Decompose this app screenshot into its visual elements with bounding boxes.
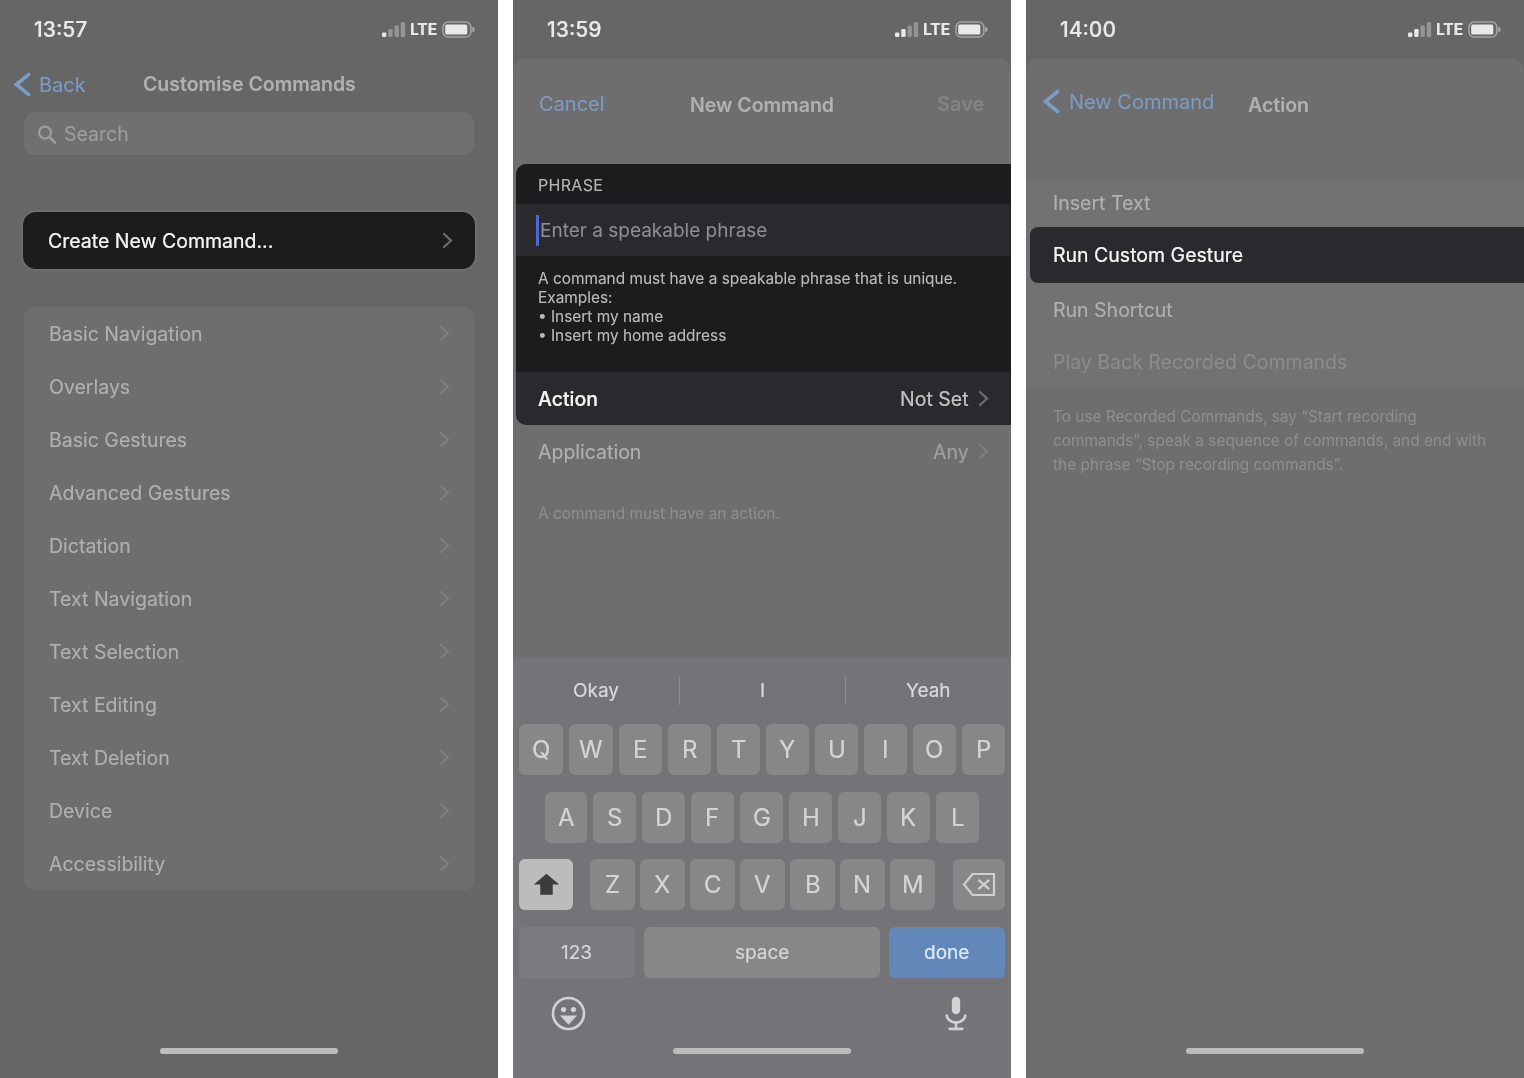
button[interactable]: O [913, 724, 956, 775]
staticText: space [735, 941, 790, 964]
staticText: Run Shortcut [1053, 298, 1173, 322]
button[interactable]: New Command [1043, 89, 1221, 114]
staticText: LTE [410, 20, 438, 39]
button[interactable]: H [789, 792, 832, 843]
button[interactable]: Yeah [846, 657, 1011, 724]
button[interactable]: Overlays [24, 360, 474, 413]
button[interactable]: D [642, 792, 685, 843]
staticText: Not Set [900, 387, 969, 411]
staticText: Run Custom Gesture [1053, 243, 1244, 267]
staticText: S [607, 803, 623, 832]
button[interactable]: J [838, 792, 881, 843]
button[interactable]: L [936, 792, 979, 843]
button[interactable]: Cancel [539, 92, 605, 116]
button[interactable]: Text Editing [24, 678, 474, 731]
button[interactable]: Text Navigation [24, 572, 474, 625]
staticText: A [558, 803, 575, 832]
staticText: H [802, 803, 820, 832]
button[interactable]: done [889, 927, 1005, 978]
button[interactable]: R [668, 724, 711, 775]
button[interactable]: W [569, 724, 613, 775]
staticText: 123 [561, 941, 593, 964]
staticText: A command must have a speakable phrase t… [538, 269, 958, 288]
button[interactable]: Text Deletion [24, 731, 474, 784]
staticText: N [853, 870, 872, 899]
staticText: To use Recorded Commands, say “Start rec… [1053, 407, 1502, 474]
button[interactable]: F [691, 792, 734, 843]
button[interactable]: M [890, 859, 935, 910]
button[interactable]: space [644, 927, 880, 978]
button[interactable]: I [864, 724, 907, 775]
button[interactable]: Okay [513, 657, 679, 724]
button[interactable]: Text Selection [24, 625, 474, 678]
button[interactable]: A [545, 792, 587, 843]
button[interactable]: Advanced Gestures [24, 466, 474, 519]
button[interactable]: N [840, 859, 885, 910]
button[interactable]: Run Shortcut [1026, 283, 1524, 336]
staticText: Text Selection [49, 640, 180, 664]
staticText: W [579, 735, 603, 764]
staticText: T [731, 735, 747, 764]
staticText: Enter a speakable phrase [540, 219, 768, 242]
staticText: A command must have an action. [538, 504, 780, 523]
button[interactable]: Application [513, 425, 1011, 478]
button[interactable]: Search [24, 112, 474, 155]
button[interactable]: Emoji keyboard [552, 997, 585, 1030]
button[interactable]: Dictation [943, 996, 969, 1031]
button[interactable]: Accessibility [24, 837, 474, 890]
staticText: New Command [1069, 90, 1215, 114]
staticText: Okay [573, 679, 620, 702]
button[interactable]: Play Back Recorded Commands [1026, 336, 1524, 388]
button[interactable]: Basic Navigation [24, 307, 474, 360]
staticText: U [828, 735, 846, 764]
button[interactable]: B [790, 859, 835, 910]
staticText: J [853, 803, 867, 832]
staticText: Application [538, 440, 642, 464]
staticText: R [682, 735, 698, 764]
button[interactable]: Y [766, 724, 809, 775]
button[interactable]: T [717, 724, 760, 775]
button[interactable]: Create New Command... [23, 212, 475, 269]
button[interactable]: E [619, 724, 662, 775]
button[interactable]: Basic Gestures [24, 413, 474, 466]
staticText: E [633, 735, 648, 764]
button[interactable]: G [740, 792, 783, 843]
button[interactable]: Action [516, 372, 1011, 425]
button[interactable]: Shift [519, 859, 573, 910]
staticText: Action [1248, 93, 1310, 117]
button[interactable]: Insert Text [1026, 179, 1524, 227]
staticText: • Insert my home address [538, 326, 727, 345]
button[interactable]: Backspace [953, 859, 1005, 910]
staticText: LTE [923, 20, 951, 39]
staticText: 13:57 [34, 17, 88, 42]
staticText: Accessibility [49, 852, 166, 876]
button[interactable]: K [887, 792, 930, 843]
button[interactable]: C [690, 859, 735, 910]
button[interactable]: I [680, 657, 845, 724]
staticText: • Insert my name [538, 307, 664, 326]
staticText: Device [49, 799, 113, 823]
staticText: B [805, 870, 821, 899]
button[interactable]: X [640, 859, 685, 910]
staticText: Insert Text [1053, 191, 1151, 215]
button[interactable]: Device [24, 784, 474, 837]
button[interactable]: Dictation [24, 519, 474, 572]
button[interactable]: Z [590, 859, 635, 910]
staticText: Any [933, 440, 969, 464]
button[interactable]: U [815, 724, 858, 775]
staticText: I [760, 679, 766, 702]
staticText: Basic Navigation [49, 322, 203, 346]
button[interactable]: S [593, 792, 636, 843]
staticText: V [754, 870, 771, 899]
staticText: Search [64, 122, 129, 146]
button[interactable]: Save [937, 92, 985, 116]
staticText: Create New Command... [48, 229, 274, 253]
button[interactable]: P [962, 724, 1005, 775]
button[interactable]: 123 [519, 927, 635, 978]
button[interactable]: Enter a speakable phrase [516, 204, 1011, 256]
button[interactable]: Q [519, 724, 563, 775]
button[interactable]: Run Custom Gesture [1030, 227, 1524, 283]
button[interactable]: Back [14, 72, 92, 97]
button[interactable]: V [740, 859, 785, 910]
staticText: X [654, 870, 671, 899]
